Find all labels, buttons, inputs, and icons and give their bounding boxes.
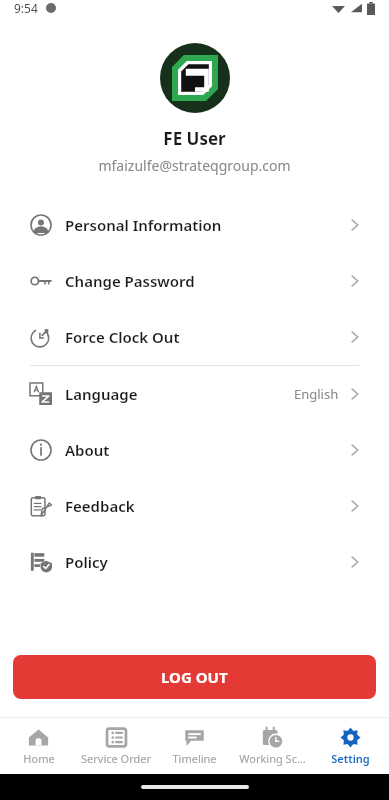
button[interactable]: Working Sc... xyxy=(233,727,311,766)
staticText: Timeline xyxy=(172,751,217,766)
staticText: About xyxy=(65,440,110,460)
staticText: Force Clock Out xyxy=(65,327,180,347)
staticText: English xyxy=(294,385,339,403)
button[interactable]: Force Clock Out xyxy=(0,309,389,365)
staticText: Setting xyxy=(331,751,370,766)
staticText: FE User xyxy=(163,127,226,150)
staticText: Policy xyxy=(65,552,108,572)
button[interactable]: Service Order xyxy=(77,727,155,766)
staticText: Feedback xyxy=(65,496,135,516)
staticText: Personal Information xyxy=(65,215,222,235)
staticText: Service Order xyxy=(81,751,151,766)
staticText: LOG OUT xyxy=(161,667,228,687)
staticText: Change Password xyxy=(65,271,195,291)
staticText: Home xyxy=(23,751,55,766)
button[interactable]: Home xyxy=(0,727,77,766)
button[interactable]: Personal Information xyxy=(0,197,389,253)
button[interactable]: About xyxy=(0,422,389,478)
staticText: 9:54 xyxy=(14,0,38,16)
button[interactable]: Feedback xyxy=(0,478,389,534)
button[interactable]: Language xyxy=(0,366,389,422)
button[interactable]: Timeline xyxy=(155,727,233,766)
button[interactable]: Policy xyxy=(0,534,389,590)
staticText: mfaizulfe@strateqgroup.com xyxy=(98,156,291,175)
button[interactable]: Setting xyxy=(311,727,389,766)
button[interactable]: LOG OUT xyxy=(13,655,376,699)
staticText: Working Sc... xyxy=(239,751,306,766)
staticText: Language xyxy=(65,384,138,404)
button[interactable]: Change Password xyxy=(0,253,389,309)
